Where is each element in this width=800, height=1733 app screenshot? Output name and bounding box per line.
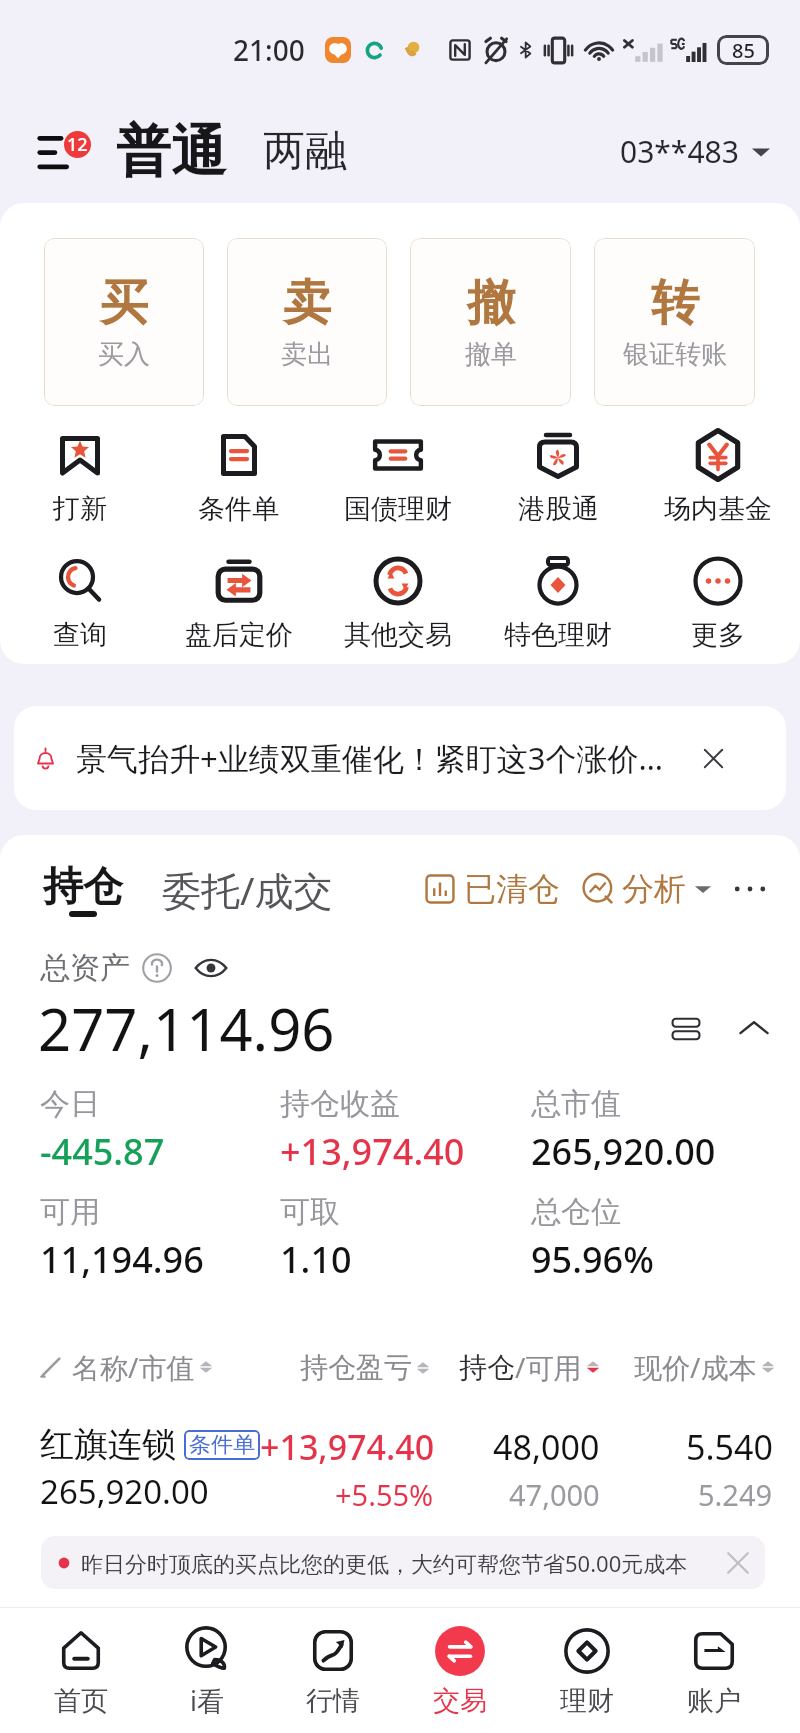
button[interactable]: 关闭 (692, 737, 734, 779)
staticText: 撤 (467, 273, 515, 333)
button[interactable]: 其他交易 (318, 554, 478, 652)
staticText: 分析 (622, 869, 686, 909)
staticText: 其他交易 (344, 618, 452, 652)
staticText: 265,920.00 (40, 1469, 209, 1514)
staticText: 48,000 (493, 1424, 600, 1470)
button[interactable]: 理财 (523, 1608, 650, 1733)
staticText: 行情 (306, 1684, 360, 1718)
staticText: 名称/市值 (72, 1348, 195, 1386)
staticText: 持仓盈亏 (300, 1350, 412, 1385)
button[interactable]: 转 (594, 238, 755, 406)
staticText: 85 (732, 37, 755, 64)
staticText: 可取 (280, 1193, 340, 1231)
staticText: 277,114.96 (38, 989, 335, 1068)
staticText: 265,920.00 (531, 1127, 716, 1176)
staticText: 特色理财 (504, 618, 612, 652)
button[interactable]: 首页 (18, 1608, 144, 1733)
button[interactable]: 持仓 (43, 861, 123, 917)
button[interactable]: 委托/成交 (162, 863, 333, 916)
staticText: 卖 (283, 273, 331, 333)
button[interactable]: 红旗连锁 (40, 1423, 773, 1514)
button[interactable]: 场内基金 (638, 428, 798, 526)
staticText: 总仓位 (531, 1193, 621, 1231)
staticText: 11,194.96 (40, 1235, 204, 1284)
staticText: i看 (190, 1682, 224, 1719)
button[interactable]: 已清仓 (424, 869, 560, 909)
button[interactable]: 买 (44, 238, 204, 406)
staticText: 1.10 (280, 1235, 352, 1284)
button[interactable]: 名称/市值 (72, 1348, 265, 1386)
staticText: 买入 (98, 338, 150, 371)
button[interactable]: 条件单 (159, 428, 318, 526)
staticText: 持仓 (459, 1350, 515, 1385)
staticText: 今日 (40, 1085, 100, 1123)
staticText: 21:00 (233, 31, 305, 69)
staticText: 买 (100, 273, 148, 333)
staticText: 47,000 (509, 1475, 600, 1514)
button[interactable]: 卖 (227, 238, 387, 406)
staticText: 更多 (691, 618, 745, 652)
button[interactable]: 撤 (410, 238, 571, 406)
staticText: 总市值 (531, 1085, 621, 1123)
staticText: 首页 (54, 1684, 108, 1718)
staticText: 理财 (560, 1684, 614, 1718)
staticText: +13,974.40 (280, 1127, 465, 1176)
staticText: +5.55% (335, 1475, 434, 1514)
staticText: 银证转账 (623, 338, 727, 371)
staticText: 国债理财 (344, 492, 452, 526)
button[interactable]: 国债理财 (318, 428, 478, 526)
staticText: 条件单 (189, 1431, 255, 1459)
staticText: 持仓收益 (280, 1085, 400, 1123)
staticText: 红旗连锁 (40, 1423, 176, 1466)
staticText: 盘后定价 (185, 618, 293, 652)
staticText: 查询 (53, 618, 107, 652)
button[interactable]: 持仓 (430, 1348, 600, 1386)
button[interactable]: 关闭提示 (717, 1542, 759, 1584)
staticText: 12 (67, 132, 88, 157)
button[interactable]: 现价/成本 (600, 1348, 775, 1386)
button[interactable]: 打新 (0, 428, 159, 526)
staticText: 交易 (433, 1684, 487, 1718)
staticText: 两融 (263, 125, 347, 178)
staticText: 昨日分时顶底的买点比您的更低，大约可帮您节省50.00元成本 (81, 1548, 717, 1578)
staticText: 场内基金 (664, 492, 772, 526)
button[interactable]: 收起 (733, 1008, 775, 1050)
button[interactable]: 盘后定价 (159, 554, 318, 652)
button[interactable]: 查询 (0, 554, 159, 652)
staticText: 现价/成本 (634, 1348, 757, 1386)
staticText: 已清仓 (464, 869, 560, 909)
button[interactable]: Menu (28, 124, 84, 180)
staticText: /可用 (515, 1348, 582, 1386)
staticText: 5.540 (686, 1424, 773, 1470)
button[interactable]: 账户 (650, 1608, 777, 1733)
button[interactable]: 更多选项 (728, 867, 772, 911)
button[interactable]: 行情 (270, 1608, 396, 1733)
staticText: 条件单 (198, 492, 279, 526)
staticText: 95.96% (531, 1235, 654, 1284)
staticText: 景气抬升+业绩双重催化！紧盯这3个涨价… (76, 737, 692, 779)
staticText: 转 (651, 273, 699, 333)
staticText: 可用 (40, 1193, 100, 1231)
staticText: 普通 (116, 117, 226, 186)
button[interactable]: 03**483 (620, 131, 771, 172)
staticText: +13,974.40 (260, 1424, 434, 1470)
staticText: -445.87 (40, 1127, 165, 1176)
button[interactable]: 持仓盈亏 (265, 1350, 430, 1385)
button[interactable]: 分析 (582, 869, 712, 909)
button[interactable]: 列表切换 (665, 1008, 707, 1050)
staticText: 港股通 (518, 492, 599, 526)
button[interactable]: i看 (144, 1608, 270, 1733)
staticText: 5.249 (698, 1475, 773, 1514)
staticText: 03**483 (620, 131, 739, 172)
button[interactable]: 特色理财 (478, 554, 638, 652)
button[interactable]: 港股通 (478, 428, 638, 526)
staticText: 账户 (687, 1684, 741, 1718)
staticText: 持仓 (43, 861, 123, 911)
staticText: 总资产 (40, 949, 130, 987)
staticText: 打新 (53, 492, 107, 526)
staticText: 撤单 (465, 338, 517, 371)
button[interactable]: 交易 (396, 1608, 523, 1733)
staticText: 卖出 (281, 338, 333, 371)
button[interactable]: 更多 (638, 554, 798, 652)
